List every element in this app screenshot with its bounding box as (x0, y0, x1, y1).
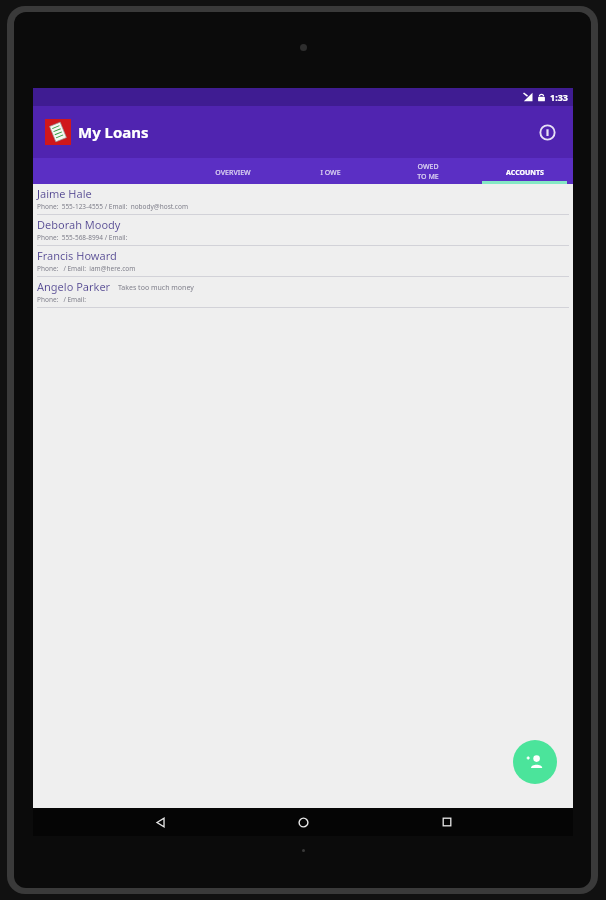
staticText: OWED (417, 162, 439, 172)
button[interactable]: Add account (513, 740, 557, 784)
button[interactable]: Back (143, 808, 177, 836)
staticText: Francis Howard (37, 248, 117, 263)
staticText: Phone: / Email: (37, 295, 90, 304)
staticText: Phone: / Email: iam@here.com (37, 264, 136, 273)
staticText: Phone: 555-123-4555 / Email: nobody@host… (37, 202, 188, 211)
staticText: My Loans (78, 122, 149, 142)
button[interactable]: Recent apps (430, 808, 464, 836)
staticText: 1:33 (550, 91, 568, 103)
staticText: Angelo Parker (37, 279, 111, 294)
button[interactable]: ACCOUNTS (476, 158, 573, 184)
staticText: TO ME (417, 172, 439, 182)
staticText: ACCOUNTS (506, 168, 544, 178)
staticText: OVERVIEW (215, 168, 251, 178)
staticText: I OWE (320, 168, 341, 178)
staticText: Phone: 555-568-8994 / Email: (37, 233, 131, 242)
button[interactable]: OVERVIEW (184, 158, 282, 184)
button[interactable]: My Loans (45, 119, 149, 145)
button[interactable]: I OWE (282, 158, 379, 184)
button[interactable]: Francis Howard (33, 246, 573, 277)
button[interactable]: Home (286, 808, 320, 836)
staticText: Deborah Moody (37, 217, 121, 232)
button[interactable]: Jaime Hale (33, 184, 573, 215)
button[interactable]: Deborah Moody (33, 215, 573, 246)
button[interactable]: OWED (379, 158, 476, 184)
button[interactable]: Angelo Parker (33, 277, 573, 308)
staticText: Takes too much money (118, 283, 194, 293)
staticText: Jaime Hale (37, 186, 92, 201)
button[interactable]: Info (531, 116, 563, 148)
